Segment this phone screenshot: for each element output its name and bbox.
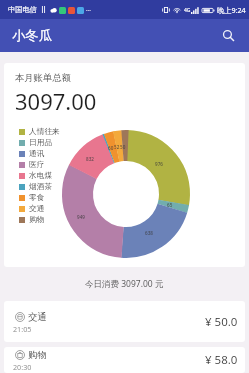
staticText: 3097.00 xyxy=(15,86,97,116)
staticText: 50 xyxy=(120,144,126,150)
staticText: 通讯 xyxy=(29,149,45,159)
staticText: 水电煤 xyxy=(29,171,53,181)
staticText: 人情往来 xyxy=(29,127,60,137)
staticText: ¥ 58.0 xyxy=(205,352,238,368)
staticText: 60 xyxy=(108,145,114,151)
staticText: 21:05 xyxy=(13,324,32,334)
staticText: 本月账单总额 xyxy=(15,72,71,84)
staticText: 交通 xyxy=(28,311,47,323)
staticText: 4G xyxy=(184,7,191,14)
staticText: 交通 xyxy=(29,204,45,214)
staticText: 832 xyxy=(86,156,94,162)
staticText: 52 xyxy=(114,144,120,150)
staticText: 今日消费 3097.00 元 xyxy=(85,278,164,290)
staticText: 638 xyxy=(145,230,153,236)
staticText: 零食 xyxy=(29,193,45,203)
staticText: 976 xyxy=(155,161,163,167)
staticText: 20:30 xyxy=(13,362,32,372)
staticText: 日用品 xyxy=(29,138,53,148)
staticText: 949 xyxy=(77,214,85,220)
staticText: ¥ 50.0 xyxy=(205,314,238,330)
staticText: 医疗 xyxy=(29,160,45,170)
staticText: 晚上9:24 xyxy=(217,5,246,15)
staticText: 购物 xyxy=(29,215,45,225)
staticText: 小冬瓜 xyxy=(12,27,52,44)
button[interactable]: 交通 xyxy=(4,301,245,342)
staticText: 烟酒茶 xyxy=(29,182,53,192)
staticText: 购物 xyxy=(28,349,47,361)
button[interactable]: 购物 xyxy=(4,347,245,373)
staticText: 中国电信 xyxy=(8,5,37,14)
button[interactable]: Search xyxy=(212,19,245,52)
staticText: ··· xyxy=(86,6,91,14)
staticText: 65 xyxy=(167,202,173,208)
